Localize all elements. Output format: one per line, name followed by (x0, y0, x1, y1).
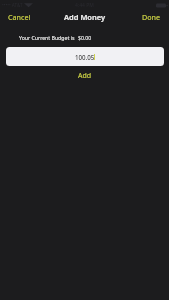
other: Signal strength (24, 2, 33, 8)
staticText: Cancel (8, 12, 31, 22)
button[interactable]: Done (136, 10, 169, 24)
staticText: 100.05 (75, 53, 95, 61)
other: Battery (156, 3, 168, 8)
staticText: $0.00 (78, 34, 92, 41)
staticText: ••••• AT&T (2, 2, 23, 8)
button[interactable]: 100.05 (6, 47, 164, 66)
button[interactable]: Cancel (0, 10, 37, 24)
staticText: Add (78, 71, 92, 81)
staticText: Your Current Budget is (19, 34, 75, 41)
staticText: Done (142, 12, 161, 22)
staticText: Add Money (64, 12, 106, 22)
staticText: 4:44 PM (75, 2, 94, 9)
button[interactable]: Add (70, 69, 100, 83)
